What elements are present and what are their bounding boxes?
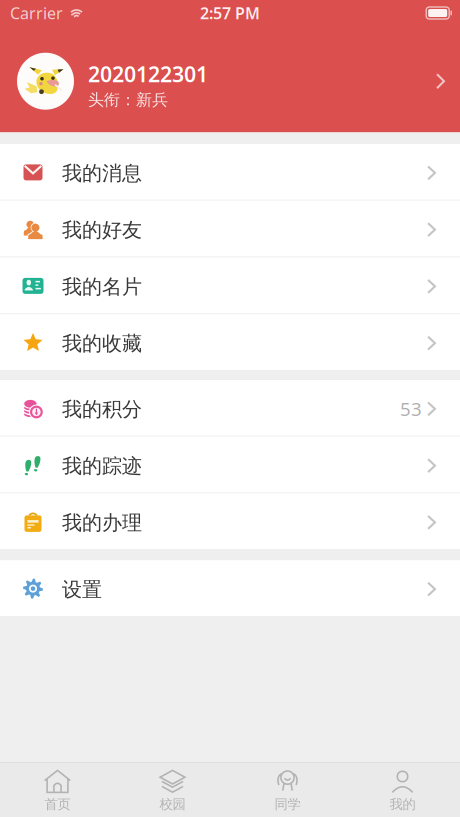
button[interactable]: 我的好友	[0, 201, 460, 257]
staticText: 我的办理	[62, 511, 142, 535]
button[interactable]: 2020122301	[0, 26, 460, 132]
staticText: Carrier	[10, 2, 63, 24]
staticText: 我的踪迹	[62, 454, 142, 478]
button[interactable]: 我的	[345, 763, 460, 817]
staticText: 我的收藏	[62, 331, 142, 356]
button[interactable]: 我的积分	[0, 380, 460, 436]
button[interactable]: 我的收藏	[0, 314, 460, 370]
button[interactable]: 校园	[115, 763, 230, 817]
staticText: 设置	[62, 577, 102, 602]
staticText: 53	[400, 396, 422, 421]
button[interactable]: 设置	[0, 560, 460, 616]
button[interactable]: 同学	[230, 763, 345, 817]
staticText: 2020122301	[88, 60, 208, 88]
button[interactable]: 我的办理	[0, 493, 460, 549]
staticText: 头衔：新兵	[88, 90, 168, 110]
staticText: 首页	[44, 796, 70, 812]
staticText: 我的积分	[62, 397, 142, 422]
staticText: 我的消息	[62, 161, 142, 186]
staticText: 我的名片	[62, 275, 142, 299]
staticText: 2:57 PM	[200, 2, 260, 24]
button[interactable]: 首页	[0, 763, 115, 817]
button[interactable]: 我的消息	[0, 144, 460, 200]
button[interactable]: 我的名片	[0, 257, 460, 313]
staticText: 我的	[389, 796, 415, 812]
button[interactable]: 我的踪迹	[0, 437, 460, 493]
staticText: 校园	[159, 796, 185, 812]
staticText: 同学	[274, 796, 300, 812]
staticText: 我的好友	[62, 218, 142, 242]
